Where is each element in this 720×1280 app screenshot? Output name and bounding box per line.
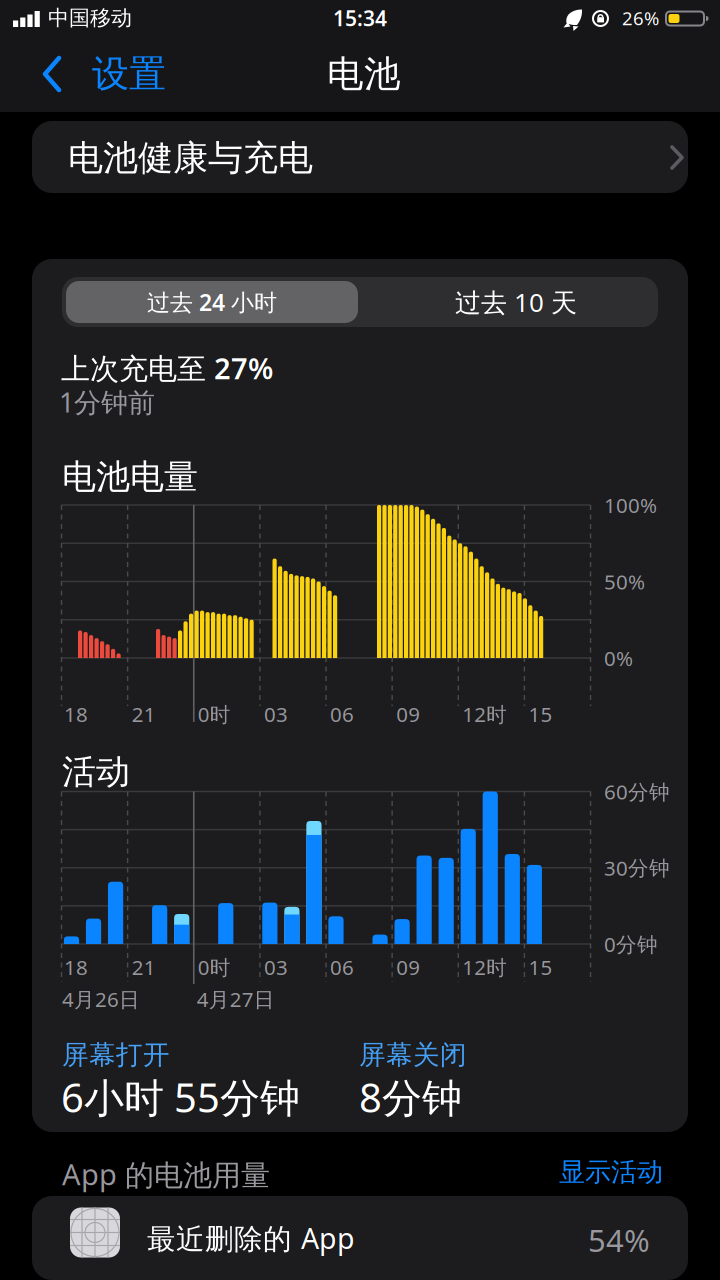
staticText: 设置 [92,51,166,97]
button[interactable]: 返回设置 [42,48,166,100]
staticText: 1分钟前 [59,384,155,420]
staticText: 0时 [198,953,231,981]
staticText: 50% [604,567,645,595]
staticText: 0时 [198,700,231,728]
button[interactable]: 过去 10 天 [368,277,664,327]
staticText: 6小时 55分钟 [61,1070,300,1124]
staticText: 0% [604,644,633,672]
staticText: 21 [132,700,156,728]
staticText: 15 [528,953,552,981]
staticText: 过去 24 小时 [147,286,277,318]
staticText: 中国移动 [48,5,132,31]
staticText: 12时 [462,700,507,728]
staticText: 09 [396,953,420,981]
staticText: 15 [528,700,552,728]
staticText: 54% [588,1219,650,1261]
staticText: 0分钟 [604,930,658,958]
button[interactable]: 最近删除的 App [32,1196,688,1280]
staticText: 06 [330,700,354,728]
staticText: 09 [396,700,420,728]
staticText: 15:34 [333,4,387,32]
staticText: 06 [330,953,354,981]
staticText: 电池 [327,51,401,97]
staticText: 上次充电至 27% [61,348,273,388]
staticText: 4月26日 [62,985,140,1013]
button[interactable]: 过去 24 小时 [64,277,360,327]
staticText: 屏幕关闭 [359,1038,467,1072]
button[interactable]: 显示活动 [523,1150,663,1194]
staticText: 电池电量 [62,456,198,498]
staticText: 03 [264,953,288,981]
staticText: 活动 [62,751,130,793]
staticText: 12时 [462,953,507,981]
staticText: 03 [264,700,288,728]
staticText: 最近删除的 App [147,1219,355,1257]
staticText: 21 [132,953,156,981]
staticText: 电池健康与充电 [68,136,313,180]
staticText: 60分钟 [604,777,670,805]
staticText: 26% [622,5,659,31]
staticText: 18 [64,953,88,981]
staticText: 过去 10 天 [455,284,577,320]
staticText: 100% [604,491,657,519]
staticText: 显示活动 [559,1156,663,1188]
staticText: 30分钟 [604,854,670,882]
staticText: 屏幕打开 [62,1038,170,1072]
staticText: 8分钟 [359,1070,462,1124]
staticText: App 的电池用量 [62,1154,270,1194]
button[interactable]: 电池健康与充电 [32,121,688,193]
staticText: 18 [64,700,88,728]
staticText: 4月27日 [197,985,275,1013]
